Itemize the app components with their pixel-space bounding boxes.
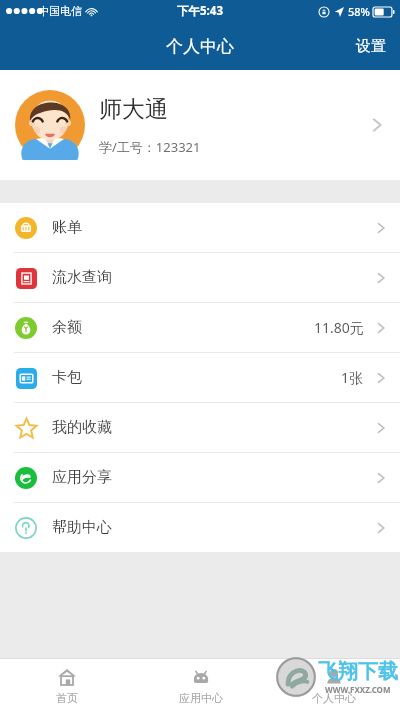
staticText: 首页 xyxy=(56,691,78,705)
button[interactable]: 个人中心 xyxy=(267,659,400,711)
staticText: 我的收藏 xyxy=(52,418,112,437)
staticText: 个人中心 xyxy=(166,36,234,57)
staticText: 账单 xyxy=(52,218,82,237)
button[interactable]: 我的收藏 xyxy=(0,403,400,453)
button[interactable]: 帮助中心 xyxy=(0,503,400,552)
staticText: 帮助中心 xyxy=(52,518,112,537)
staticText: 11.80元 xyxy=(314,318,364,337)
staticText: 中国电信 xyxy=(38,4,82,18)
staticText: 个人中心 xyxy=(312,691,356,705)
button[interactable]: 设置 xyxy=(342,22,400,70)
button[interactable]: 余额 xyxy=(0,303,400,353)
staticText: 师大通 xyxy=(99,95,168,124)
staticText: 应用分享 xyxy=(52,468,112,487)
staticText: 下午5:43 xyxy=(177,3,223,19)
button[interactable]: 账单 xyxy=(0,203,400,253)
staticText: 设置 xyxy=(356,37,386,56)
button[interactable]: 师大通 xyxy=(0,70,400,180)
staticText: 学/工号：123321 xyxy=(99,138,201,156)
staticText: 余额 xyxy=(52,318,82,337)
staticText: 卡包 xyxy=(52,368,82,387)
staticText: 飞翔下载 xyxy=(318,659,398,684)
staticText: WWW.FXXZ.COM xyxy=(325,684,391,695)
staticText: 1张 xyxy=(341,368,364,387)
staticText: 应用中心 xyxy=(179,691,223,705)
staticText: 流水查询 xyxy=(52,268,112,287)
button[interactable]: 应用中心 xyxy=(134,659,267,711)
button[interactable]: 卡包 xyxy=(0,353,400,403)
button[interactable]: 应用分享 xyxy=(0,453,400,503)
button[interactable]: 流水查询 xyxy=(0,253,400,303)
button[interactable]: 首页 xyxy=(0,659,134,711)
staticText: 58% xyxy=(348,4,370,19)
